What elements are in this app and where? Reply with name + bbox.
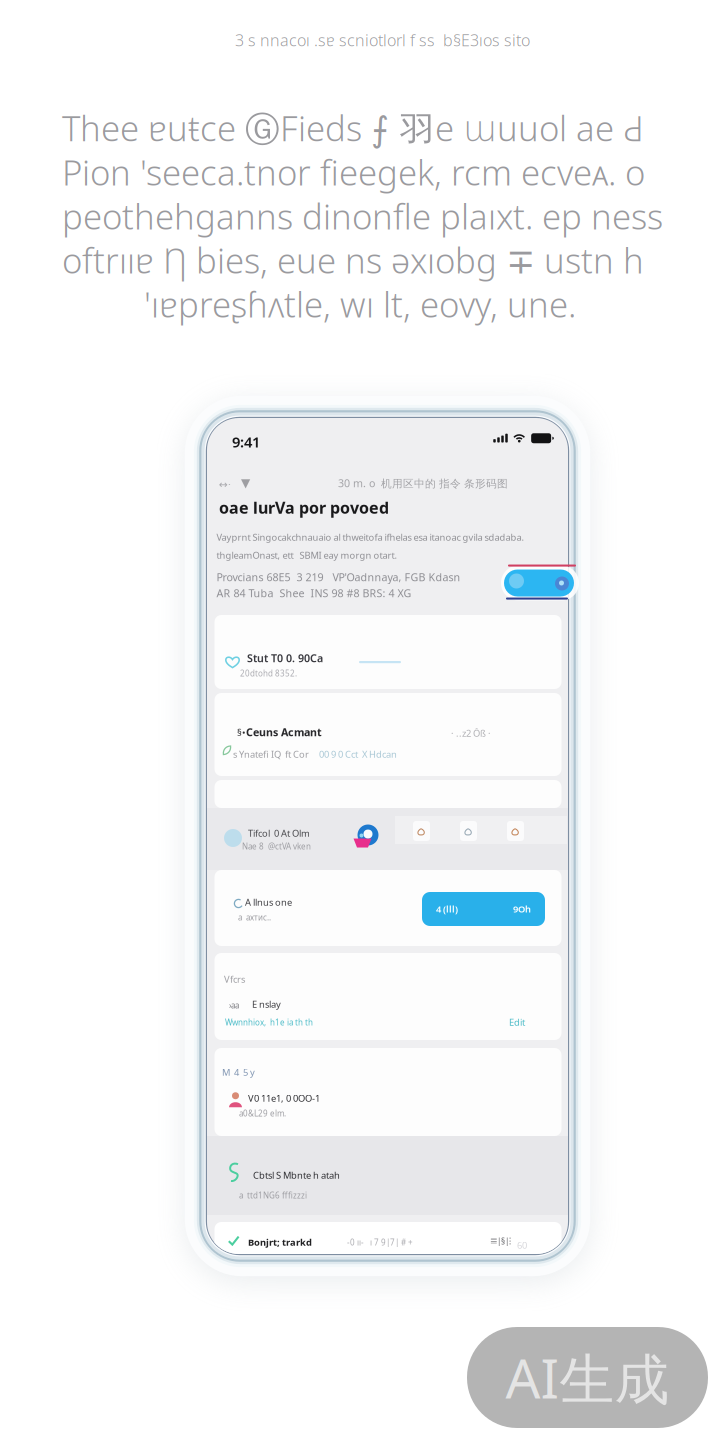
button[interactable]: Back [219, 477, 231, 491]
staticText: Provcians 68E5 3 219 VP'Oadnnaya, FGB Kd… [216, 570, 460, 584]
staticText: Tifcol 0 At Olm [248, 827, 310, 839]
staticText: M 4 5 y [222, 1066, 255, 1078]
staticText: Wwnnhiox, h1e ia th th [225, 1017, 313, 1028]
button[interactable]: Stut T0 0. 90Ca [214, 615, 561, 689]
staticText: oftrııɐ Ƞ bies, eue ns ǝxıobg ∓ ustn h [62, 237, 644, 283]
staticText: ▼ [241, 476, 250, 490]
staticText: 4 (lll) [436, 903, 458, 915]
staticText: peothehganns dinonfle plaıxt. ep ness [62, 193, 663, 239]
staticText: oae lurVa por povoed [219, 497, 389, 518]
staticText: ↔· [219, 477, 231, 491]
staticText: a ахтис.. [238, 912, 271, 923]
button[interactable]: V0 11e1, 0 0OO-1 [222, 1084, 422, 1116]
staticText: ›аа [229, 1000, 239, 1011]
staticText: Thee ɐuŧce ⒼFieds ⨍ 羽e աuuol ae Ԁ [62, 105, 644, 151]
staticText: 20dtohd 8352. [240, 668, 297, 679]
staticText: Vayprnt Singocakchnauaio al thweitofa if… [216, 531, 524, 543]
staticText: §• [237, 726, 246, 738]
button[interactable]: 4 (lll) [422, 892, 545, 926]
staticText: s Ynatefi IQ ft Cor [233, 748, 309, 760]
staticText: 3 s nnacoı .sɐ scniotlorl f ss b§E3ıos s… [235, 29, 530, 51]
staticText: 30 m. o 机用区中的 指令 条形码图 [338, 476, 508, 490]
staticText: 'ıɐpreʂɦʌtle, wı lt, eovy, une. [144, 281, 576, 327]
staticText: AR 84 Tuba Shee INS 98 #8 BRS: 4 XG [216, 586, 411, 600]
staticText: Pion 'seeca.tnor fieegek, rcm ecveᴀ. o [62, 149, 645, 195]
button[interactable]: Cbtsl S Mbnte h atah [207, 1136, 568, 1215]
staticText: Edit [509, 1016, 525, 1028]
staticText: -0 ıı- ı 7 9|7| # + [347, 1237, 413, 1248]
button[interactable]: Wwnnhiox, h1e ia th th [225, 1014, 313, 1031]
staticText: Cbtsl S Mbnte h atah [253, 1169, 340, 1181]
button[interactable]: Highlight badge [503, 563, 579, 601]
staticText: V0 11e1, 0 0OO-1 [248, 1092, 320, 1104]
staticText: Ceuns Acmant [246, 725, 322, 739]
staticText: 9Oh [513, 903, 531, 915]
button[interactable]: Tifcol 0 At Olm [207, 808, 568, 870]
button[interactable]: Ceuns Acmant [214, 693, 561, 776]
staticText: A llnus one [245, 896, 292, 908]
staticText: Bonjrt; trarkd [248, 1236, 312, 1248]
staticText: Nae 8 @ctVA vken [242, 841, 311, 852]
staticText: 9:41 [232, 432, 260, 451]
staticText: thgleamOnast, ett SBMI eay morgn otart. [216, 549, 397, 561]
button[interactable]: Bonjrt trarkd [214, 1222, 561, 1260]
staticText: Vfcrs [224, 973, 245, 985]
staticText: · ..z2 Ôß · [451, 727, 491, 739]
staticText: AI生成 [505, 1341, 669, 1414]
button[interactable]: Edit [505, 1013, 529, 1031]
staticText: 00 9 0 Cct X Hdcan [319, 748, 397, 760]
staticText: ☰|§|⁝ [490, 1236, 511, 1247]
staticText: a0&L29 elm. [239, 1108, 286, 1119]
button[interactable]: Filter [241, 476, 250, 490]
staticText: 60 [517, 1239, 527, 1251]
staticText: E nslay [252, 998, 281, 1010]
staticText: Stut T0 0. 90Ca [247, 651, 323, 665]
staticText: a ttd1NG6 fffizzzi [239, 1190, 307, 1201]
